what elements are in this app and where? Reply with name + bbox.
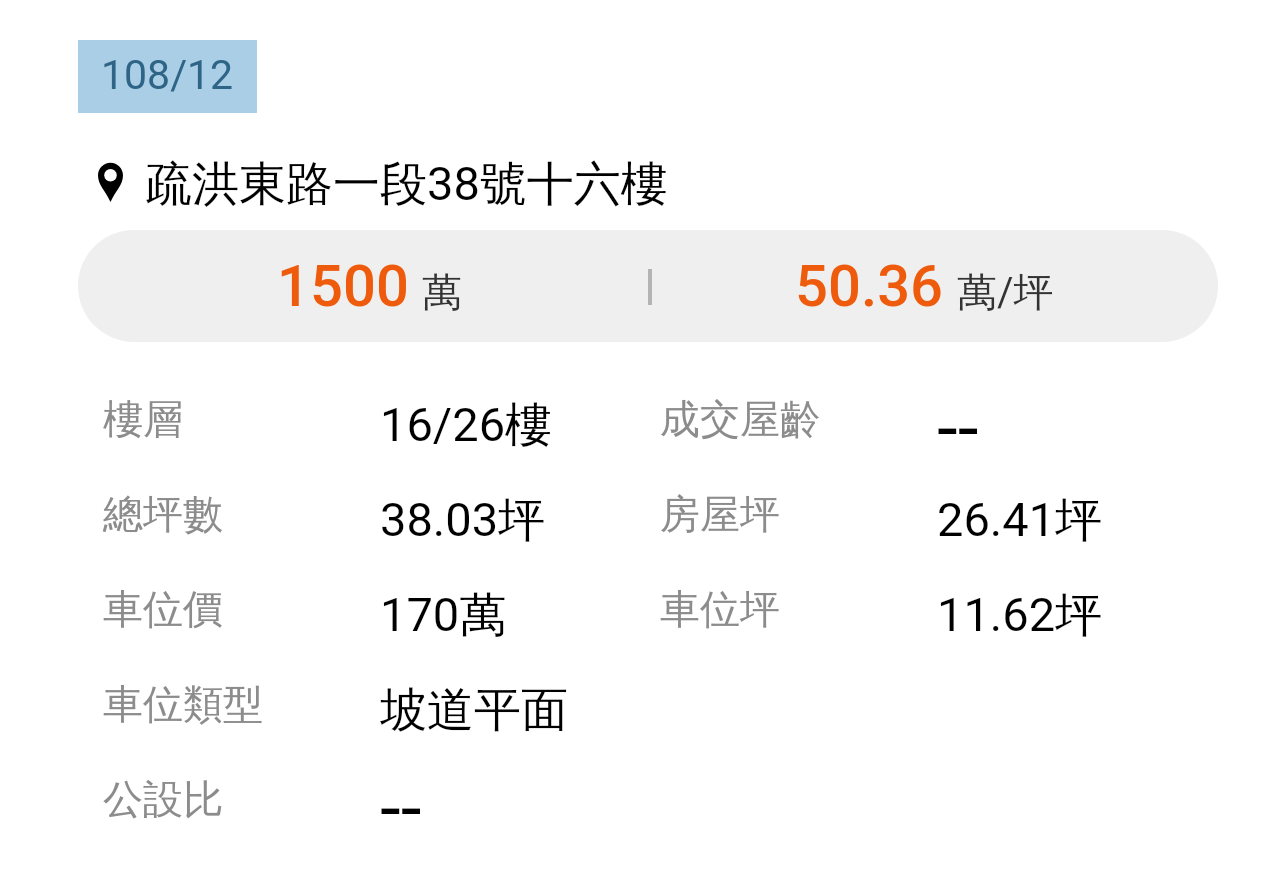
staticText: 車位坪	[660, 584, 780, 634]
staticText: 公設比	[103, 774, 223, 824]
staticText: 170萬	[380, 586, 507, 645]
staticText: 11.62坪	[937, 586, 1103, 645]
button[interactable]: 總坪數	[0, 464, 1280, 559]
staticText: 車位類型	[103, 679, 263, 729]
staticText: 疏洪東路一段38號十六樓	[145, 155, 668, 214]
button[interactable]: 1500	[78, 230, 1218, 342]
staticText: 房屋坪	[660, 489, 780, 539]
button[interactable]: Location	[98, 155, 668, 214]
button[interactable]: 車位類型	[0, 654, 1280, 749]
staticText: 車位價	[103, 584, 223, 634]
staticText: 總坪數	[103, 489, 223, 539]
staticText: --	[937, 384, 979, 472]
staticText: 16/26樓	[380, 396, 553, 455]
button[interactable]: 公設比	[0, 749, 1280, 844]
staticText: 108/12	[101, 51, 234, 99]
button[interactable]: 108/12	[78, 40, 257, 113]
button[interactable]: 樓層	[0, 369, 1280, 464]
staticText: 坡道平面	[380, 681, 568, 740]
staticText: 萬	[422, 267, 462, 317]
other: Location	[98, 163, 123, 202]
button[interactable]: 車位價	[0, 559, 1280, 654]
staticText: 成交屋齡	[660, 394, 820, 444]
staticText: 26.41坪	[937, 491, 1103, 550]
staticText: 38.03坪	[380, 491, 546, 550]
staticText: --	[380, 764, 422, 852]
staticText: 萬/坪	[957, 267, 1054, 317]
staticText: 樓層	[103, 394, 183, 444]
staticText: 1500	[277, 252, 409, 320]
staticText: 50.36	[795, 252, 944, 320]
